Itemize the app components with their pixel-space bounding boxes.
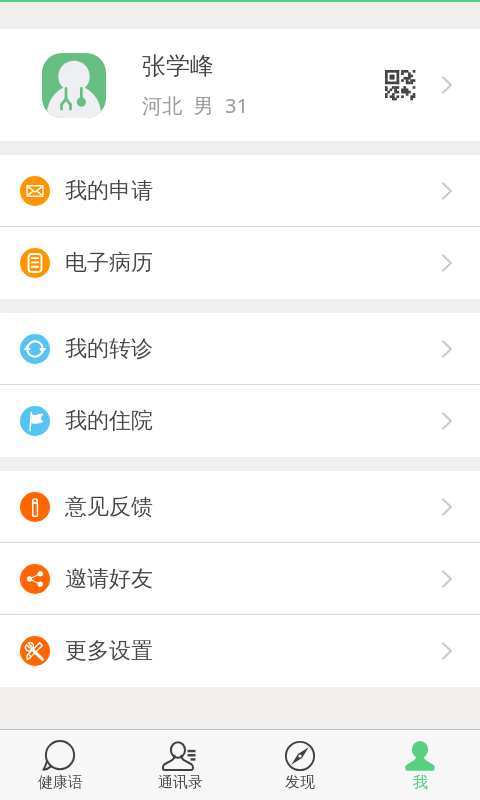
- staticText: 我的申请: [65, 177, 153, 205]
- button[interactable]: 更多设置: [0, 615, 480, 687]
- staticText: 健康语: [38, 773, 83, 792]
- staticText: 我的转诊: [65, 335, 153, 363]
- button[interactable]: 我: [360, 730, 480, 800]
- staticText: 河北 男 31: [142, 92, 249, 119]
- button[interactable]: 我的住院: [0, 385, 480, 457]
- button[interactable]: 发现: [240, 730, 360, 800]
- button[interactable]: 通讯录: [120, 730, 240, 800]
- button[interactable]: 张学峰: [0, 29, 480, 141]
- staticText: 发现: [285, 773, 315, 792]
- button[interactable]: My QR code: [385, 70, 415, 100]
- staticText: 意见反馈: [65, 493, 153, 521]
- staticText: 更多设置: [65, 637, 153, 665]
- button[interactable]: 我的转诊: [0, 313, 480, 385]
- staticText: 邀请好友: [65, 565, 153, 593]
- button[interactable]: 意见反馈: [0, 471, 480, 543]
- staticText: 我的住院: [65, 407, 153, 435]
- button[interactable]: 邀请好友: [0, 543, 480, 615]
- staticText: 通讯录: [158, 773, 203, 792]
- button[interactable]: 我的申请: [0, 155, 480, 227]
- button[interactable]: 健康语: [0, 730, 120, 800]
- staticText: 张学峰: [142, 51, 214, 81]
- staticText: 我: [413, 773, 428, 792]
- button[interactable]: 电子病历: [0, 227, 480, 299]
- staticText: 电子病历: [65, 249, 153, 277]
